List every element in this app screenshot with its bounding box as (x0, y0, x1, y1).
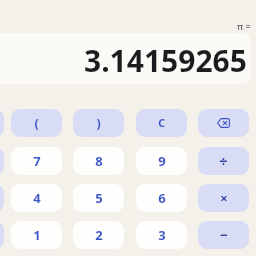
button[interactable]: 5 (73, 184, 124, 212)
button[interactable]: 4 (11, 184, 62, 212)
staticText: 1 (33, 226, 41, 244)
staticText: 6 (158, 189, 166, 207)
staticText: 4 (33, 189, 41, 207)
button[interactable]: × (198, 184, 249, 212)
button[interactable] (0, 147, 4, 175)
staticText: 8 (95, 152, 103, 170)
button[interactable]: 9 (136, 147, 187, 175)
staticText: 7 (33, 152, 41, 170)
button[interactable]: 3.14159265 (0, 33, 250, 84)
staticText: − (220, 226, 228, 244)
button[interactable]: 7 (11, 147, 62, 175)
staticText: 9 (158, 152, 166, 170)
button[interactable]: C (136, 109, 187, 137)
staticText: C (158, 116, 165, 130)
button[interactable]: ( (11, 109, 62, 137)
staticText: ) (96, 115, 101, 132)
staticText: ÷ (219, 151, 228, 171)
staticText: 3.14159265 (84, 40, 247, 81)
button[interactable] (0, 184, 4, 212)
button[interactable]: ) (73, 109, 124, 137)
button[interactable]: 1 (11, 221, 62, 249)
button[interactable] (198, 109, 249, 137)
button[interactable]: ÷ (198, 147, 249, 175)
button[interactable]: 8 (73, 147, 124, 175)
button[interactable] (0, 109, 4, 137)
button[interactable]: 3 (136, 221, 187, 249)
button[interactable]: 6 (136, 184, 187, 212)
staticText: 5 (95, 189, 103, 207)
button[interactable] (0, 221, 4, 249)
staticText: 3 (158, 226, 166, 244)
staticText: × (220, 189, 228, 207)
staticText: ( (34, 115, 39, 132)
button[interactable]: 2 (73, 221, 124, 249)
button[interactable]: − (198, 221, 249, 249)
staticText: 2 (95, 226, 103, 244)
staticText: π = (237, 20, 251, 32)
